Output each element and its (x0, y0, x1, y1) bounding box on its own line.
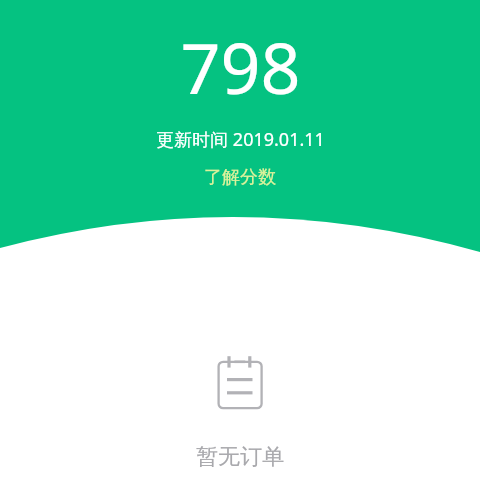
other: No orders (216, 353, 264, 409)
staticText: 了解分数 (204, 166, 276, 189)
staticText: 更新时间 2019.01.11 (156, 127, 325, 152)
button[interactable]: 了解分数 (194, 164, 286, 191)
staticText: 798 (180, 19, 301, 114)
staticText: 暂无订单 (196, 443, 284, 471)
button[interactable]: 798 (166, 19, 315, 114)
